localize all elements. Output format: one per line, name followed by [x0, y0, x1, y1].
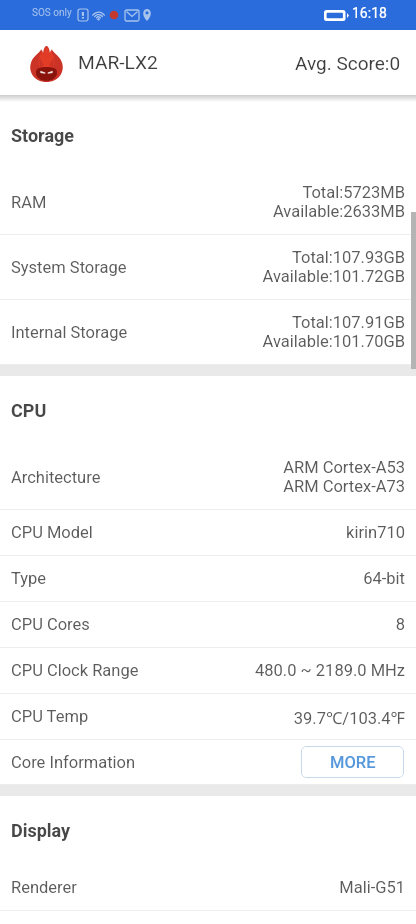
staticText: Core Information: [11, 753, 136, 772]
button[interactable]: CPU Model: [0, 510, 416, 556]
staticText: ARM Cortex-A73: [283, 477, 405, 496]
button[interactable]: System Storage: [0, 235, 416, 300]
staticText: 39.7℃/103.4℉: [293, 706, 405, 728]
staticText: Renderer: [11, 878, 77, 897]
button[interactable]: CPU Clock Range: [0, 648, 416, 694]
button[interactable]: Type: [0, 556, 416, 602]
staticText: CPU Cores: [11, 615, 90, 634]
staticText: Available:101.70GB: [262, 332, 405, 351]
button[interactable]: Internal Storage: [0, 300, 416, 365]
staticText: 480.0 ~ 2189.0 MHz: [254, 661, 405, 680]
button[interactable]: MAR-LX2: [0, 30, 416, 101]
staticText: ARM Cortex-A53: [283, 458, 405, 477]
button[interactable]: Renderer: [0, 865, 416, 911]
staticText: Storage: [11, 125, 75, 146]
staticText: Architecture: [11, 468, 101, 487]
staticText: MAR-LX2: [78, 51, 158, 74]
staticText: CPU Model: [11, 523, 93, 542]
staticText: Available:2633MB: [272, 202, 405, 221]
staticText: Total:5723MB: [302, 183, 405, 202]
staticText: System Storage: [11, 258, 127, 277]
staticText: Display: [11, 820, 71, 841]
button[interactable]: MORE: [301, 746, 404, 778]
staticText: Total:107.91GB: [291, 313, 405, 332]
staticText: kirin710: [346, 523, 405, 542]
staticText: 16:18: [352, 5, 387, 21]
staticText: Mali-G51: [339, 878, 405, 897]
staticText: RAM: [11, 193, 47, 212]
staticText: Available:101.72GB: [262, 267, 405, 286]
staticText: CPU Temp: [11, 707, 89, 726]
staticText: 8: [395, 615, 405, 634]
button[interactable]: RAM: [0, 170, 416, 235]
staticText: CPU Clock Range: [11, 661, 139, 680]
staticText: SOS only: [32, 7, 72, 19]
staticText: 64-bit: [363, 569, 405, 588]
staticText: MORE: [330, 753, 376, 772]
staticText: Internal Storage: [11, 323, 128, 342]
button[interactable]: CPU Temp: [0, 694, 416, 740]
button[interactable]: CPU Cores: [0, 602, 416, 648]
staticText: CPU: [11, 400, 47, 421]
staticText: Total:107.93GB: [291, 248, 405, 267]
staticText: Type: [11, 569, 47, 588]
staticText: Avg. Score:0: [295, 52, 401, 74]
button[interactable]: Architecture: [0, 445, 416, 510]
